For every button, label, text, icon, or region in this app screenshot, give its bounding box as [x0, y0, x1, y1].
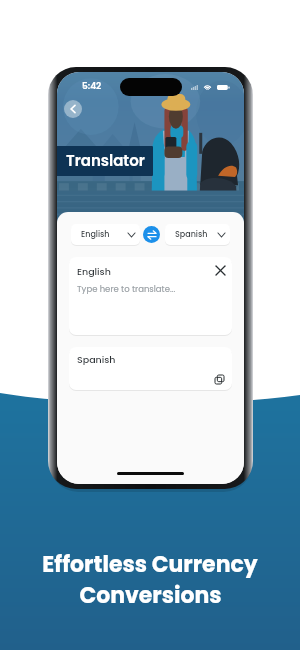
staticText: English — [81, 229, 110, 240]
button[interactable]: Spanish — [165, 224, 230, 245]
staticText: 5:42 — [82, 80, 102, 93]
button[interactable]: English — [69, 257, 232, 335]
staticText: Type here to translate... — [77, 283, 176, 295]
button[interactable]: Clear text — [213, 263, 227, 277]
staticText: English — [77, 265, 111, 278]
staticText: Spanish — [77, 353, 116, 366]
staticText: Conversions — [79, 580, 222, 611]
button[interactable]: English — [71, 224, 140, 245]
staticText: Translator — [66, 150, 145, 171]
button[interactable]: Copy translation — [213, 373, 225, 385]
button[interactable]: Swap languages — [143, 226, 160, 243]
staticText: Spanish — [175, 229, 208, 240]
button[interactable]: Spanish — [69, 347, 232, 390]
button[interactable]: Back — [64, 100, 82, 118]
staticText: Effortless Currency — [42, 549, 258, 580]
